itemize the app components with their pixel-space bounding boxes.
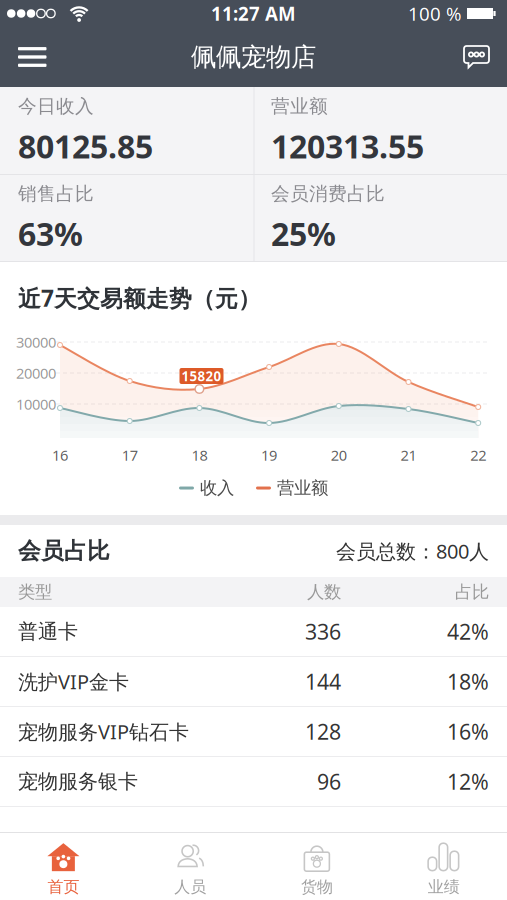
staticText: 19 xyxy=(261,445,277,465)
staticText: 18 xyxy=(191,445,207,465)
staticText: 144 xyxy=(305,667,341,696)
staticText: 16 xyxy=(52,445,68,465)
staticText: 16% xyxy=(447,717,489,746)
staticText: 会员总数：800人 xyxy=(336,538,489,564)
staticText: 22 xyxy=(470,445,486,465)
staticText: 42% xyxy=(447,617,489,646)
staticText: 占比 xyxy=(455,581,489,603)
staticText: 20 xyxy=(331,445,347,465)
staticText: 20000 xyxy=(16,363,56,383)
staticText: 宠物服务VIP钻石卡 xyxy=(18,718,189,745)
button[interactable]: 首页 xyxy=(0,833,127,900)
staticText: 类型 xyxy=(18,581,52,603)
button[interactable]: 货物 xyxy=(253,833,380,900)
button[interactable]: 人员 xyxy=(127,833,254,900)
staticText: 洗护VIP金卡 xyxy=(18,668,129,695)
staticText: 336 xyxy=(305,617,341,646)
staticText: 18% xyxy=(447,667,489,696)
staticText: 96 xyxy=(317,767,341,796)
staticText: 80125.85 xyxy=(18,125,153,167)
staticText: 收入 xyxy=(200,477,234,499)
staticText: 63% xyxy=(18,212,83,255)
staticText: 营业额 xyxy=(277,477,328,499)
staticText: 业绩 xyxy=(428,877,460,897)
staticText: 100 % xyxy=(408,1,462,26)
staticText: 21 xyxy=(400,445,416,465)
staticText: 会员消费占比 xyxy=(271,182,385,205)
button[interactable]: 业绩 xyxy=(380,833,507,900)
button[interactable]: Messages xyxy=(463,37,507,77)
staticText: 货物 xyxy=(301,877,333,897)
staticText: 12% xyxy=(447,767,489,796)
staticText: 今日收入 xyxy=(18,95,94,118)
staticText: 营业额 xyxy=(271,95,328,118)
staticText: 人员 xyxy=(174,877,206,897)
staticText: 11:27 AM xyxy=(211,1,296,26)
staticText: 近7天交易额走势（元） xyxy=(18,283,261,313)
staticText: 人数 xyxy=(307,581,341,603)
button[interactable]: Menu xyxy=(0,37,46,77)
staticText: 会员占比 xyxy=(18,537,110,565)
staticText: 120313.55 xyxy=(271,125,424,167)
staticText: 25% xyxy=(271,212,336,255)
staticText: 128 xyxy=(305,717,341,746)
staticText: 首页 xyxy=(47,877,79,897)
staticText: 宠物服务银卡 xyxy=(18,769,138,794)
staticText: 佩佩宠物店 xyxy=(191,41,316,72)
staticText: 销售占比 xyxy=(18,182,94,205)
staticText: 10000 xyxy=(16,394,56,414)
staticText: 15820 xyxy=(181,367,221,385)
staticText: 17 xyxy=(122,445,138,465)
staticText: 普通卡 xyxy=(18,619,78,644)
staticText: 30000 xyxy=(16,332,56,352)
